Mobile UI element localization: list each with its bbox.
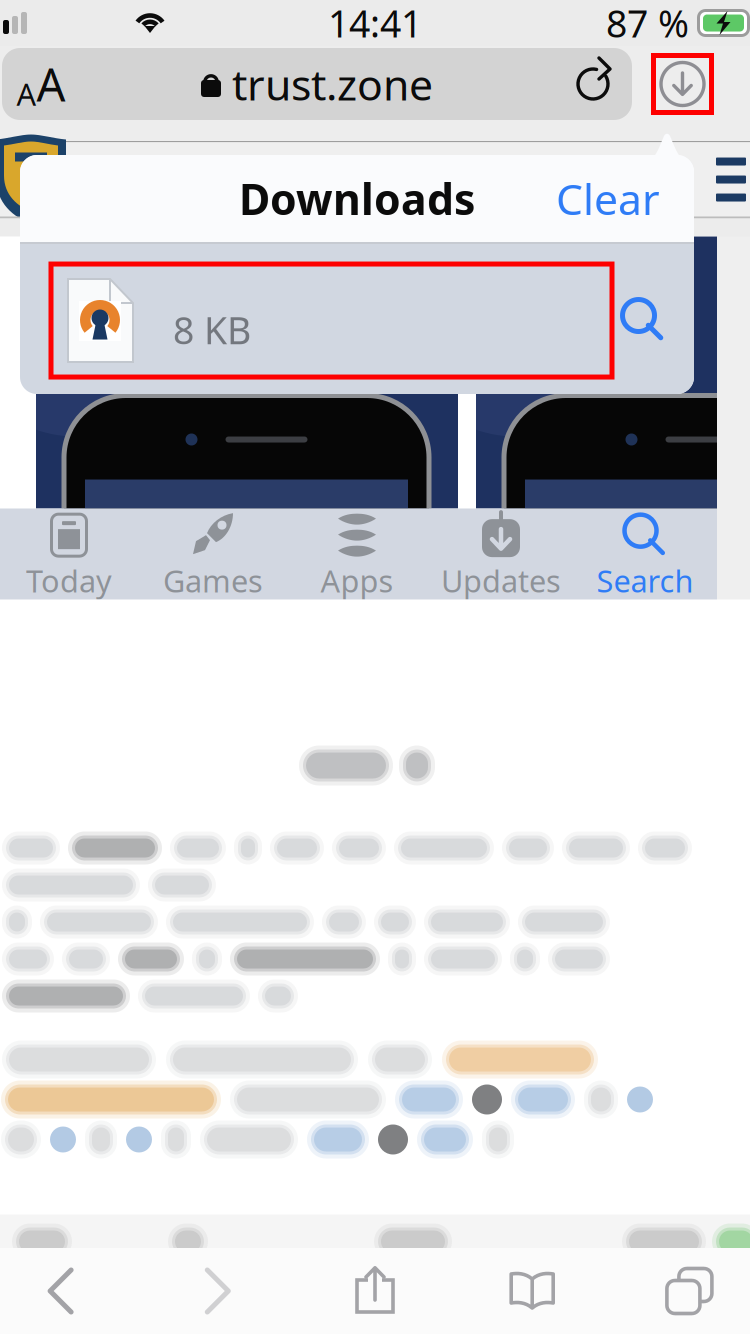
button[interactable]: Clear [540, 152, 676, 245]
button[interactable]: Bookmarks [454, 1248, 611, 1334]
staticText: 8 KB [173, 305, 251, 355]
staticText: Se [621, 286, 688, 364]
staticText: A [36, 54, 65, 114]
staticText: Clear [556, 170, 660, 227]
button[interactable]: Forward [139, 1248, 296, 1334]
staticText: Downloads [239, 170, 475, 227]
staticText: trust.zone [232, 56, 433, 112]
staticText: Updates [441, 560, 561, 601]
button[interactable]: Page settings [2, 48, 80, 120]
button[interactable]: Reload [554, 48, 632, 120]
button[interactable]: Share [296, 1248, 454, 1334]
staticText: ec [621, 370, 686, 448]
button[interactable]: Tabs [611, 1248, 750, 1334]
staticText: Search [596, 560, 693, 601]
staticText: Apps [320, 560, 393, 601]
staticText: 14:41 [328, 0, 422, 48]
button[interactable]: 8 KB [51, 264, 612, 377]
staticText: Today [26, 560, 112, 601]
staticText: A [16, 73, 36, 114]
button[interactable]: Search downloads [612, 289, 674, 351]
button[interactable]: Downloads [651, 53, 714, 115]
staticText: Games [163, 560, 263, 601]
staticText: 87 % [606, 0, 689, 48]
button[interactable]: Back [0, 1248, 139, 1334]
